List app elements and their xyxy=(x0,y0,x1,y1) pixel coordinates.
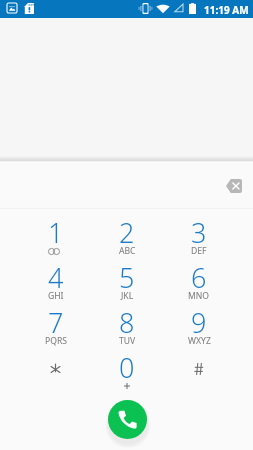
button[interactable]: pound xyxy=(163,350,235,395)
staticText: WXYZ xyxy=(188,335,211,347)
button[interactable]: 7 xyxy=(20,305,91,350)
staticText: 2 xyxy=(119,214,135,251)
staticText: DEF xyxy=(191,245,207,257)
button[interactable]: Call xyxy=(108,400,147,439)
staticText: ABC xyxy=(119,245,136,257)
staticText: 8 xyxy=(119,304,135,341)
button[interactable]: 0 xyxy=(91,350,163,395)
staticText: 0 xyxy=(119,349,135,386)
button[interactable]: 4 xyxy=(20,260,91,305)
button[interactable]: 3 xyxy=(163,215,235,260)
button[interactable]: 9 xyxy=(163,305,235,350)
staticText: 1 xyxy=(48,214,64,251)
button[interactable]: 6 xyxy=(163,260,235,305)
staticText: 6 xyxy=(191,259,207,296)
staticText: JKL xyxy=(121,290,134,302)
staticText: 7 xyxy=(48,304,64,341)
button[interactable]: 1 xyxy=(20,215,91,260)
staticText: 5 xyxy=(119,259,135,296)
button[interactable]: 8 xyxy=(91,305,163,350)
button[interactable]: 5 xyxy=(91,260,163,305)
staticText: GHI xyxy=(48,290,64,302)
button[interactable]: 2 xyxy=(91,215,163,260)
staticText: 3 xyxy=(191,214,207,251)
staticText: PQRS xyxy=(45,335,67,347)
button[interactable]: Backspace xyxy=(221,174,247,198)
staticText: 4 xyxy=(48,259,64,296)
staticText: TUV xyxy=(119,335,136,347)
staticText: 11:19 AM xyxy=(204,3,249,17)
staticText: 9 xyxy=(191,304,207,341)
staticText: MNO xyxy=(188,290,210,302)
button[interactable]: star xyxy=(20,350,91,395)
